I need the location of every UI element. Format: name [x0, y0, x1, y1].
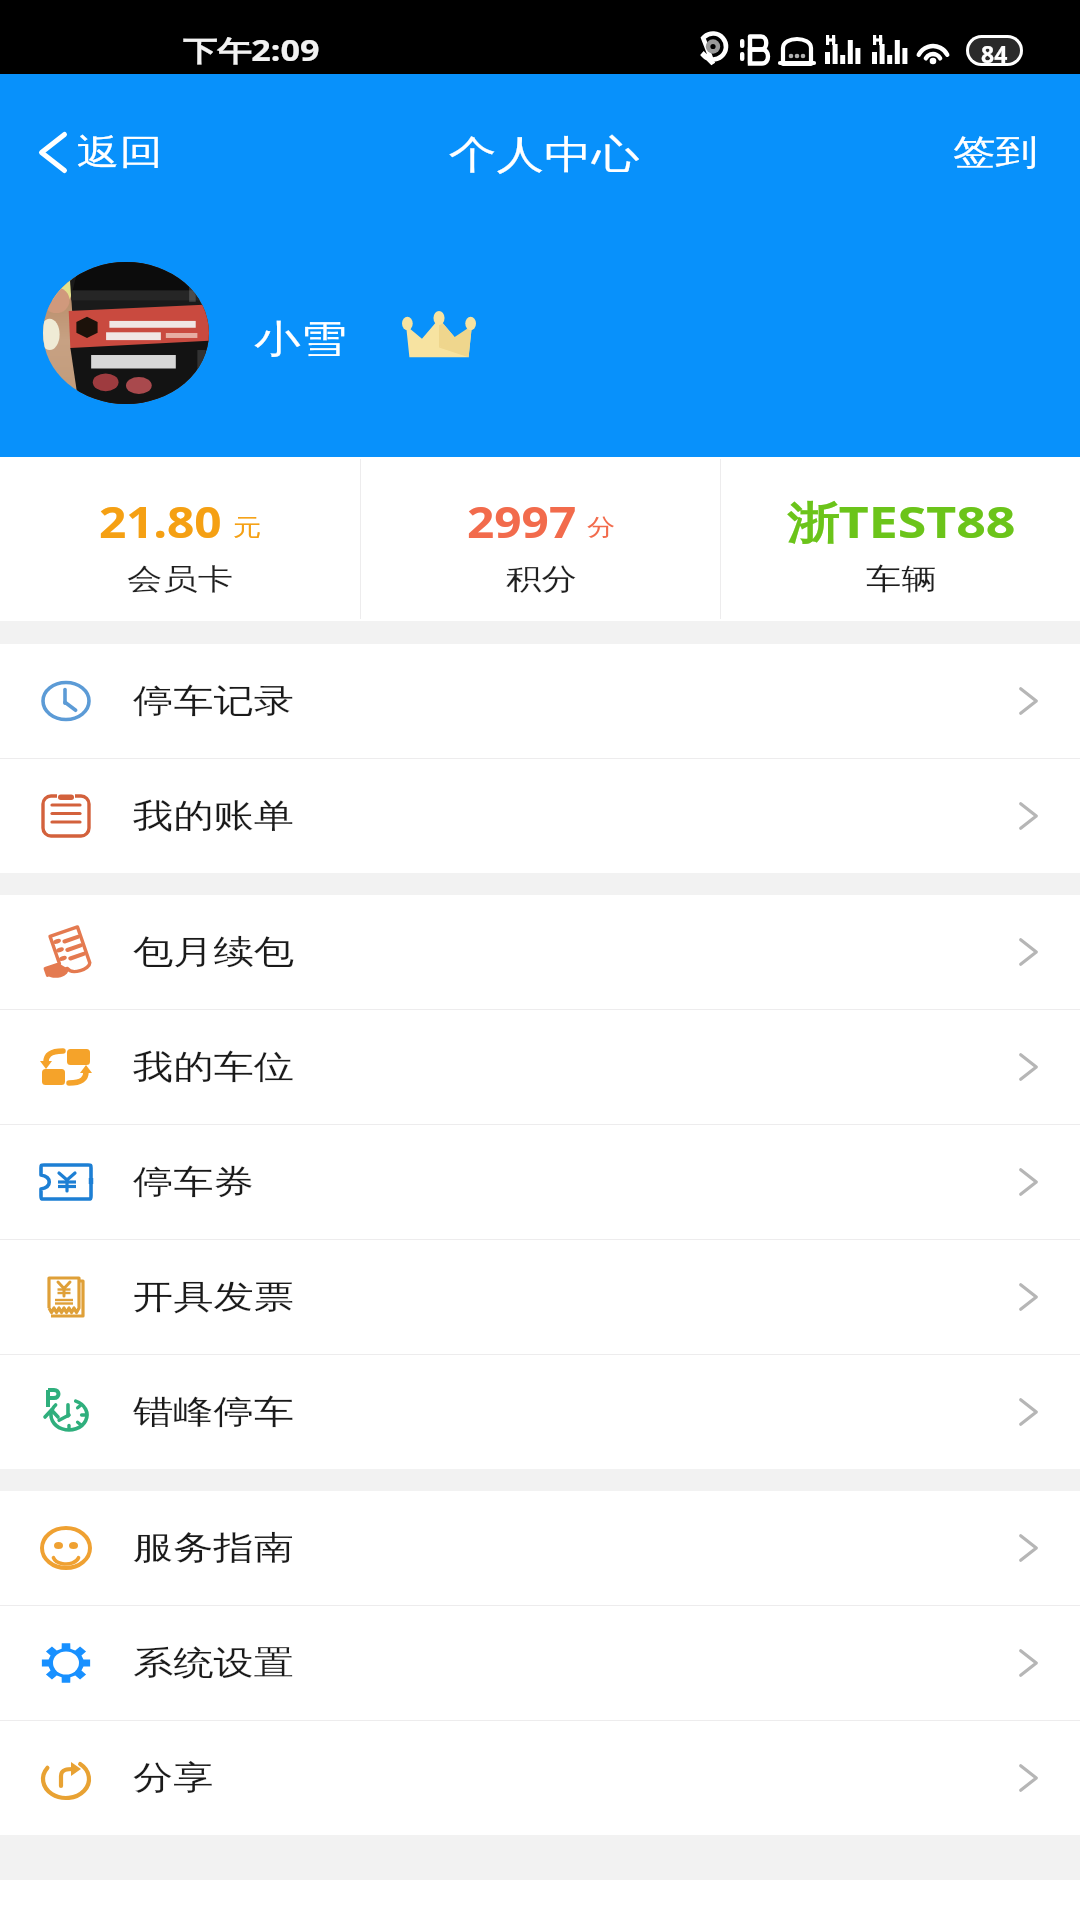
staticText: 返回 — [77, 130, 162, 174]
staticText: 小雪 — [254, 315, 347, 363]
button[interactable]: 分享 — [0, 1721, 1080, 1835]
button[interactable]: 返回 — [0, 112, 184, 192]
staticText: 停车记录 — [133, 680, 294, 722]
button[interactable]: 2997 — [361, 457, 720, 621]
staticText: 服务指南 — [133, 1527, 294, 1569]
button[interactable]: 我的账单 — [0, 759, 1080, 873]
button[interactable]: 停车记录 — [0, 644, 1080, 758]
staticText: 车辆 — [866, 561, 937, 598]
staticText: 浙TEST88 — [787, 492, 1016, 551]
staticText: 系统设置 — [133, 1642, 294, 1684]
staticText: 我的账单 — [133, 795, 294, 837]
button[interactable]: 签到 — [923, 112, 1080, 192]
button[interactable]: 错峰停车 — [0, 1355, 1080, 1469]
staticText: 分享 — [133, 1757, 213, 1799]
staticText: 会员卡 — [127, 561, 233, 598]
staticText: 21.80 — [99, 492, 222, 551]
staticText: 错峰停车 — [133, 1391, 294, 1433]
staticText: 包月续包 — [133, 931, 294, 973]
staticText: 停车券 — [133, 1161, 254, 1203]
staticText: 元 — [233, 513, 261, 542]
staticText: 签到 — [953, 130, 1038, 174]
staticText: 个人中心 — [449, 130, 639, 179]
button[interactable]: 服务指南 — [0, 1491, 1080, 1605]
staticText: 2997 — [467, 492, 577, 551]
staticText: 84 — [981, 38, 1008, 63]
staticText: 下午2:09 — [183, 31, 320, 69]
button[interactable]: 开具发票 — [0, 1240, 1080, 1354]
staticText: 分 — [587, 513, 615, 542]
button[interactable]: 停车券 — [0, 1125, 1080, 1239]
staticText: 积分 — [506, 561, 577, 598]
staticText: 开具发票 — [133, 1276, 294, 1318]
staticText: 我的车位 — [133, 1046, 294, 1088]
button[interactable]: 浙TEST88 — [721, 457, 1080, 621]
button[interactable]: 包月续包 — [0, 895, 1080, 1009]
button[interactable]: 我的车位 — [0, 1010, 1080, 1124]
button[interactable]: 21.80 — [0, 457, 360, 621]
button[interactable]: 头像 — [43, 262, 209, 404]
button[interactable]: 系统设置 — [0, 1606, 1080, 1720]
